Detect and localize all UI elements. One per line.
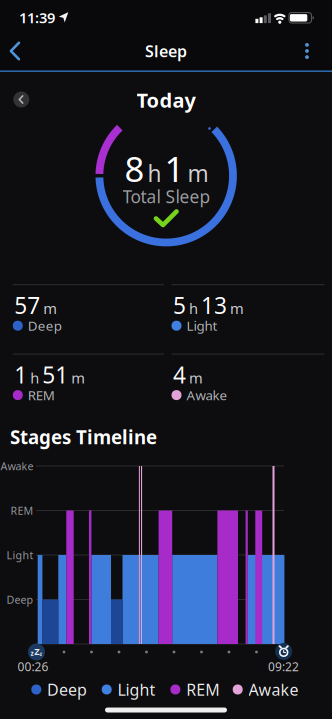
staticText: 5: [173, 290, 186, 320]
staticText: Light: [118, 679, 156, 700]
staticText: h: [189, 299, 198, 318]
staticText: h: [30, 368, 39, 387]
button[interactable]: Previous day: [13, 91, 29, 107]
staticText: m: [187, 158, 208, 188]
staticText: Deep: [6, 592, 33, 607]
staticText: Total Sleep: [122, 185, 210, 208]
staticText: z: [30, 649, 33, 658]
staticText: 51: [42, 359, 68, 390]
button[interactable]: More options: [294, 38, 320, 63]
staticText: m: [43, 299, 57, 318]
staticText: REM: [186, 679, 220, 700]
staticText: Today: [136, 87, 195, 113]
staticText: REM: [28, 386, 55, 404]
staticText: Light: [186, 317, 217, 334]
staticText: Stages Timeline: [10, 425, 157, 449]
staticText: Sleep: [145, 40, 187, 62]
staticText: Awake: [0, 459, 33, 473]
staticText: m: [71, 368, 85, 387]
staticText: 1: [164, 145, 184, 191]
staticText: 57: [14, 290, 40, 320]
staticText: Awake: [186, 386, 227, 404]
staticText: 1: [14, 359, 27, 390]
staticText: 8: [124, 145, 144, 191]
button[interactable]: Back: [0, 38, 30, 63]
staticText: REM: [10, 503, 33, 518]
staticText: 13: [201, 290, 227, 320]
staticText: 11:39: [19, 8, 55, 27]
staticText: Deep: [28, 317, 62, 334]
staticText: m: [230, 299, 244, 318]
staticText: z: [40, 650, 43, 657]
staticText: Z: [34, 645, 39, 658]
staticText: h: [147, 158, 161, 188]
staticText: 4: [173, 359, 186, 390]
staticText: Awake: [248, 679, 298, 700]
staticText: 00:26: [17, 658, 48, 674]
staticText: m: [189, 368, 203, 387]
staticText: Light: [6, 548, 33, 562]
staticText: 09:22: [268, 658, 299, 674]
staticText: Deep: [47, 679, 87, 700]
